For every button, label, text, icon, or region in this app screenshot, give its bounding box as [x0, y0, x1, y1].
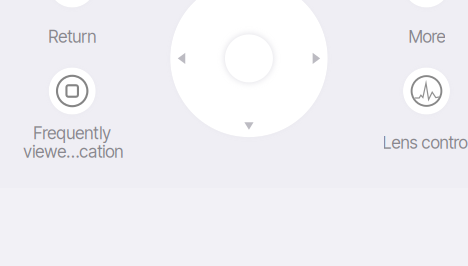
staticText: Frequently	[33, 123, 111, 143]
button[interactable]: Direction pad	[0, 0, 468, 266]
staticText: More	[408, 26, 445, 47]
button[interactable]: More	[0, 0, 468, 266]
staticText: viewe…cation	[23, 141, 123, 162]
staticText: Return	[48, 26, 96, 47]
button[interactable]: Return	[0, 0, 468, 266]
button[interactable]: Frequently viewed location	[0, 0, 468, 266]
button[interactable]: Lens control	[0, 0, 468, 266]
staticText: Lens control	[382, 132, 468, 153]
